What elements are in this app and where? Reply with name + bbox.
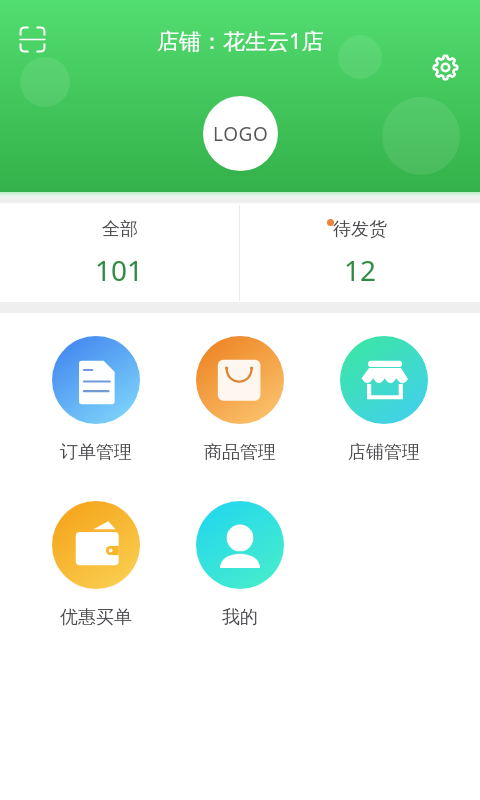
button[interactable]: 待发货: [240, 203, 480, 302]
button[interactable]: 商品管理: [168, 336, 312, 464]
staticText: 优惠买单: [60, 606, 132, 629]
staticText: 待发货: [333, 218, 387, 241]
staticText: 商品管理: [204, 441, 276, 464]
button[interactable]: 店铺：花生云1店: [157, 25, 324, 55]
staticText: 店铺管理: [348, 441, 420, 464]
button[interactable]: 订单管理: [24, 336, 168, 464]
staticText: 订单管理: [60, 441, 132, 464]
staticText: 全部: [102, 218, 138, 241]
button[interactable]: 店铺管理: [312, 336, 456, 464]
staticText: 我的: [222, 606, 258, 629]
button[interactable]: LOGO: [203, 96, 278, 171]
staticText: LOGO: [213, 121, 269, 147]
button[interactable]: 我的: [168, 501, 312, 629]
button[interactable]: Settings: [423, 45, 467, 89]
button[interactable]: 全部: [0, 203, 239, 302]
button[interactable]: 优惠买单: [24, 501, 168, 629]
staticText: 101: [95, 251, 144, 289]
button[interactable]: Scan QR code: [10, 17, 54, 61]
staticText: 店铺：花生云1店: [157, 25, 324, 55]
staticText: 12: [344, 251, 377, 289]
